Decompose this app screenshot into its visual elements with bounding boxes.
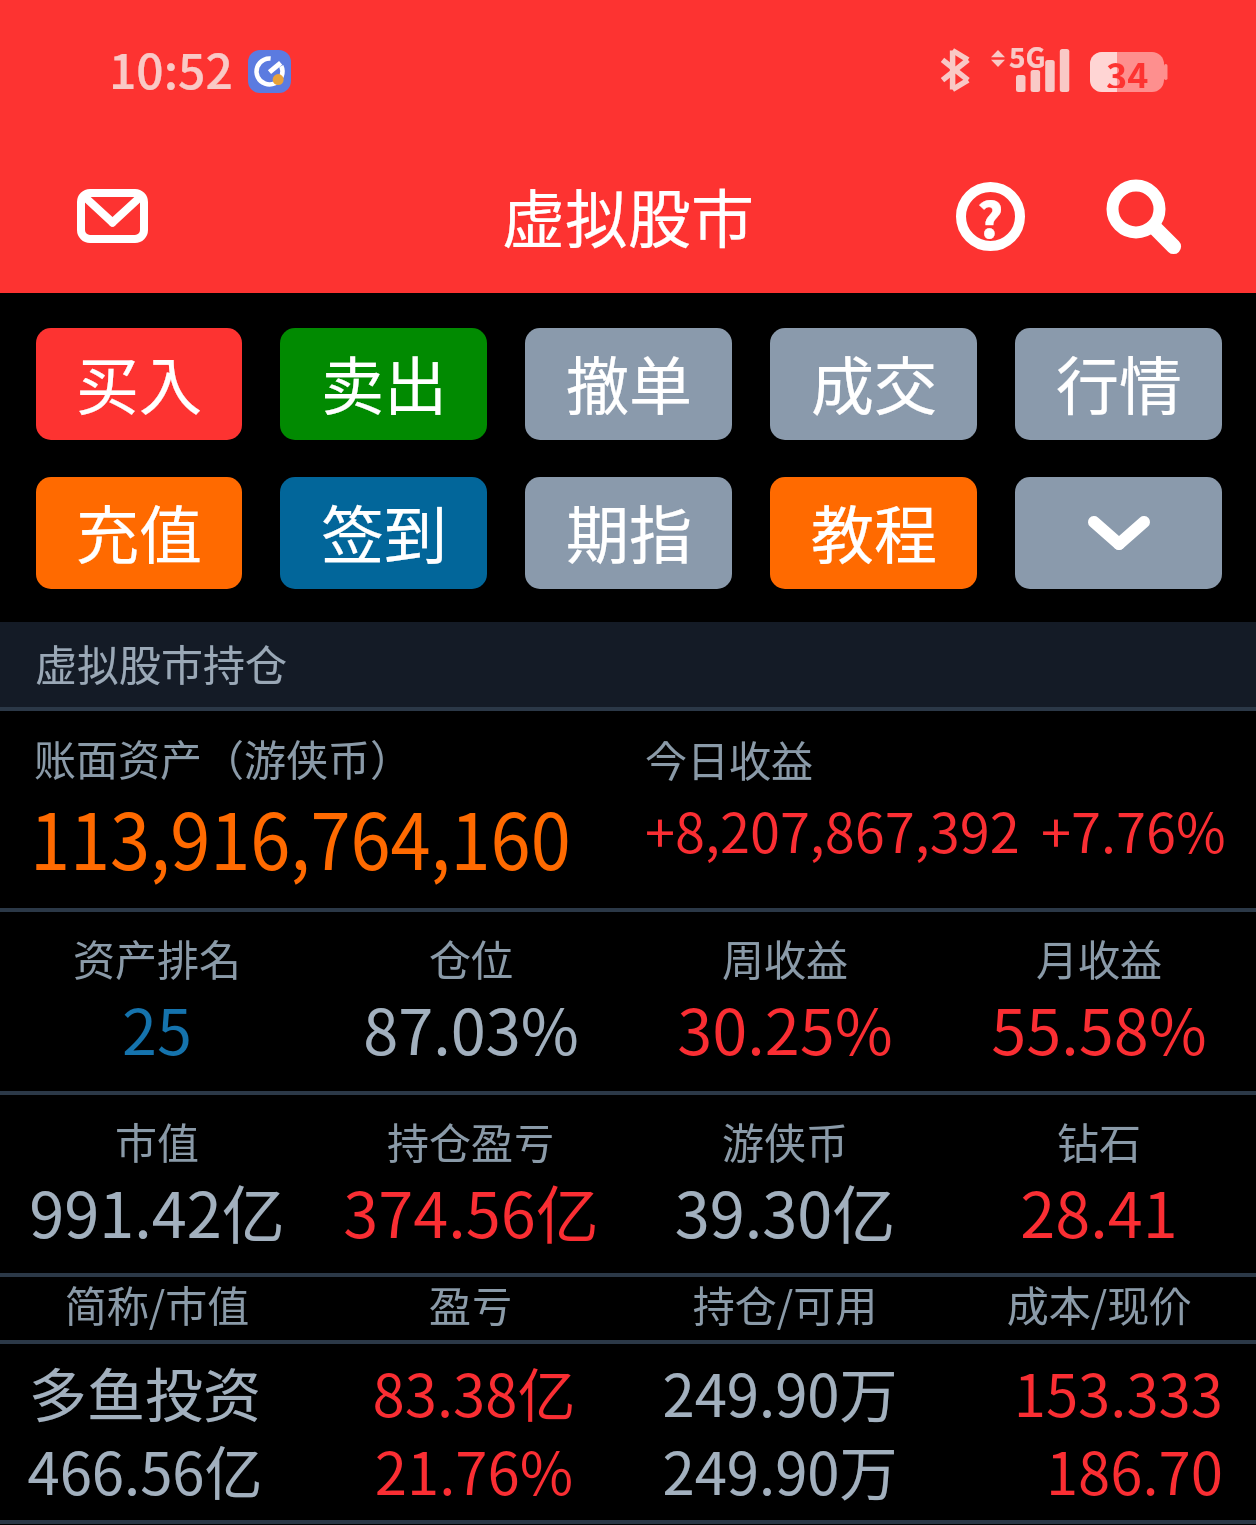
staticText: 仓位 <box>314 927 628 988</box>
staticText: 钻石 <box>942 1110 1256 1171</box>
staticText: 月收益 <box>942 927 1256 988</box>
staticText: 249.90万 <box>635 1428 925 1508</box>
button[interactable]: Search <box>1083 160 1195 272</box>
staticText: 466.56亿 <box>0 1428 290 1508</box>
button[interactable]: More <box>1015 477 1222 589</box>
staticText: 21.76% <box>329 1428 619 1508</box>
button[interactable]: 教程 <box>770 477 977 589</box>
staticText: 简称/市值 <box>0 1273 314 1334</box>
staticText: 成本/现价 <box>942 1273 1256 1334</box>
button[interactable]: 签到 <box>280 477 487 589</box>
staticText: 撤单 <box>566 336 692 427</box>
staticText: 34 <box>1106 48 1149 88</box>
staticText: 83.38亿 <box>329 1350 619 1430</box>
button[interactable]: 卖出 <box>280 328 487 440</box>
staticText: 成交 <box>811 336 937 427</box>
staticText: 374.56亿 <box>314 1165 628 1256</box>
staticText: 113,916,764,160 <box>30 780 571 893</box>
button[interactable]: 多鱼投资 <box>0 1344 1256 1520</box>
staticText: 游侠币 <box>628 1110 942 1171</box>
button[interactable]: 买入 <box>36 328 242 440</box>
staticText: 55.58% <box>942 982 1256 1073</box>
staticText: ? <box>977 181 1004 252</box>
staticText: 周收益 <box>628 927 942 988</box>
staticText: 市值 <box>0 1110 314 1171</box>
button[interactable]: 成交 <box>770 328 977 440</box>
staticText: +8,207,867,392 <box>645 790 1020 868</box>
staticText: 虚拟股市 <box>502 169 754 260</box>
staticText: 教程 <box>811 485 937 576</box>
staticText: 5G <box>1009 36 1046 77</box>
staticText: 186.70 <box>933 1428 1223 1508</box>
staticText: 虚拟股市持仓 <box>35 632 288 693</box>
button[interactable]: Messages <box>55 159 169 273</box>
staticText: 账面资产（游侠币） <box>34 727 413 788</box>
staticText: 签到 <box>321 485 447 576</box>
staticText: 卖出 <box>321 336 447 427</box>
button[interactable]: 撤单 <box>525 328 732 440</box>
staticText: 10:52 <box>109 33 233 103</box>
staticText: 买入 <box>76 336 202 427</box>
staticText: 28.41 <box>942 1165 1256 1256</box>
staticText: 资产排名 <box>0 927 314 988</box>
staticText: 期指 <box>566 485 692 576</box>
staticText: 盈亏 <box>314 1273 628 1334</box>
staticText: 153.333 <box>933 1350 1223 1430</box>
button[interactable]: 充值 <box>36 477 242 589</box>
staticText: 充值 <box>76 485 202 576</box>
staticText: 多鱼投资 <box>0 1350 290 1430</box>
staticText: 991.42亿 <box>0 1165 314 1256</box>
button[interactable]: 行情 <box>1015 328 1222 440</box>
staticText: 今日收益 <box>645 728 814 789</box>
staticText: 87.03% <box>314 982 628 1073</box>
staticText: 持仓盈亏 <box>314 1110 628 1171</box>
staticText: 行情 <box>1056 336 1182 427</box>
staticText: 39.30亿 <box>628 1165 942 1256</box>
staticText: 25 <box>0 982 314 1073</box>
staticText: 30.25% <box>628 982 942 1073</box>
staticText: +7.76% <box>1041 790 1226 868</box>
staticText: 持仓/可用 <box>628 1273 942 1334</box>
staticText: 249.90万 <box>635 1350 925 1430</box>
button[interactable]: 期指 <box>525 477 732 589</box>
button[interactable]: Help <box>934 160 1046 272</box>
